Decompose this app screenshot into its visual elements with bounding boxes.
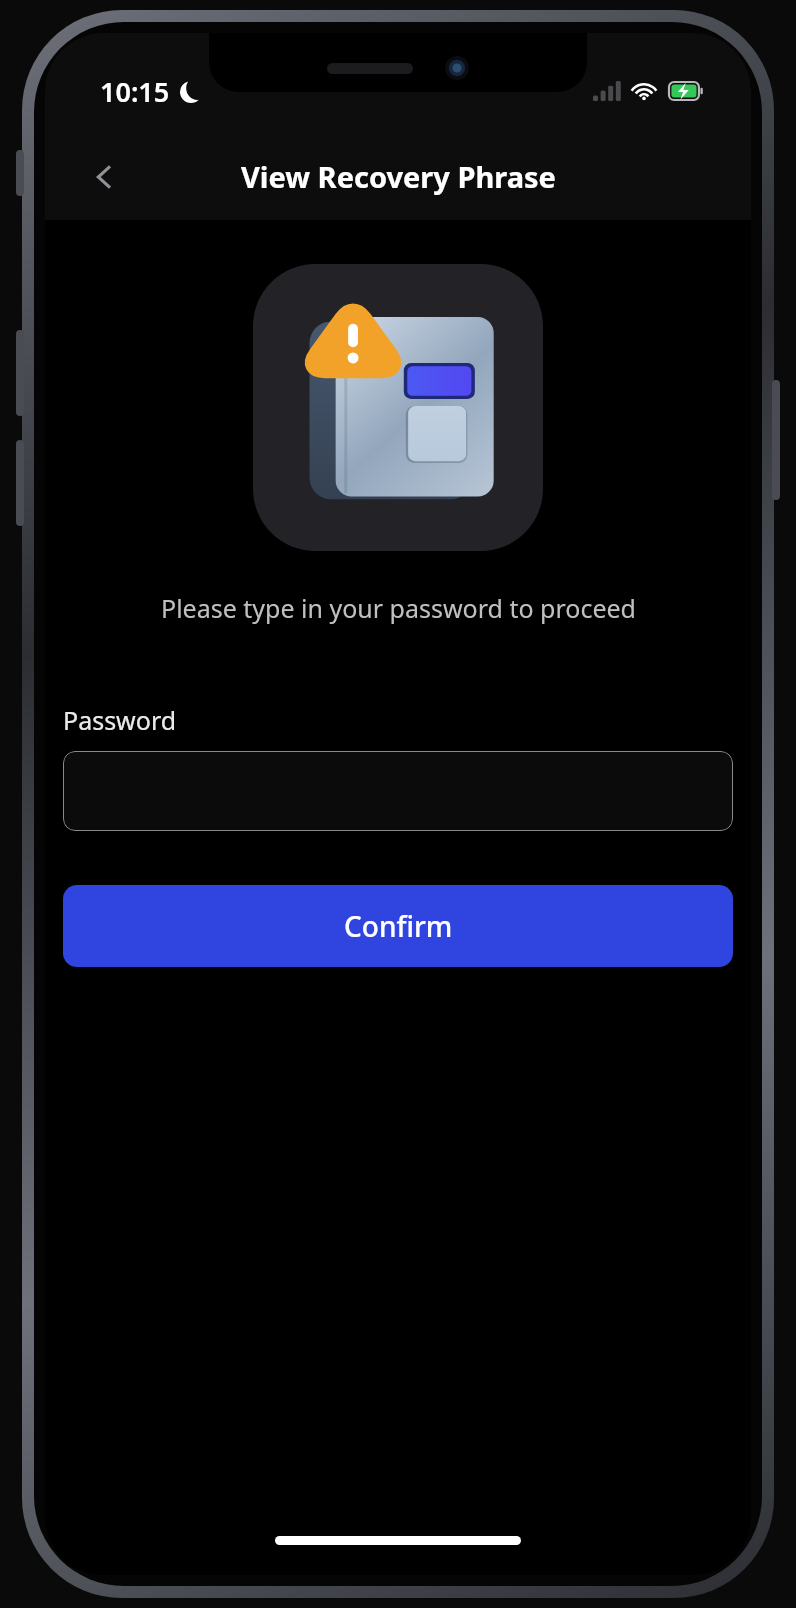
- button[interactable]: Confirm: [63, 885, 733, 967]
- staticText: Confirm: [344, 907, 453, 945]
- staticText: 10:15: [100, 73, 170, 110]
- staticText: Please type in your password to proceed: [161, 591, 636, 625]
- staticText: Password: [63, 703, 177, 737]
- staticText: View Recovery Phrase: [241, 157, 556, 196]
- button[interactable]: [63, 751, 733, 831]
- button[interactable]: Back: [73, 145, 137, 209]
